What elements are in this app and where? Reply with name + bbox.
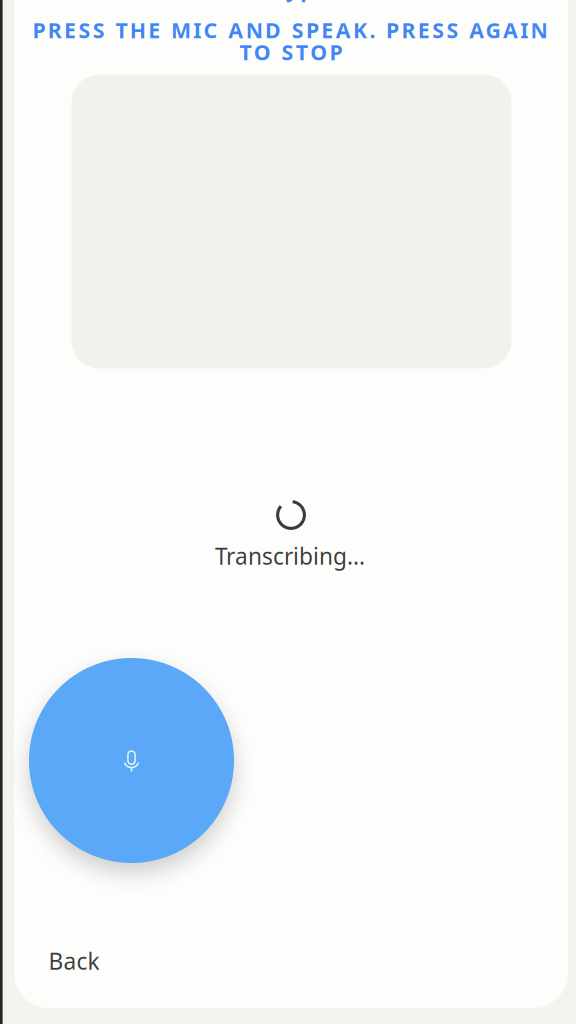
staticText: Back	[48, 946, 99, 976]
staticText: Type	[272, 0, 328, 3]
button[interactable]: Back	[38, 938, 109, 984]
staticText: PRESS THE MIC AND SPEAK. PRESS AGAIN	[32, 16, 548, 44]
button[interactable]: Record	[29, 658, 234, 863]
staticText: TO STOP	[239, 38, 343, 66]
staticText: Transcribing...	[215, 541, 365, 571]
